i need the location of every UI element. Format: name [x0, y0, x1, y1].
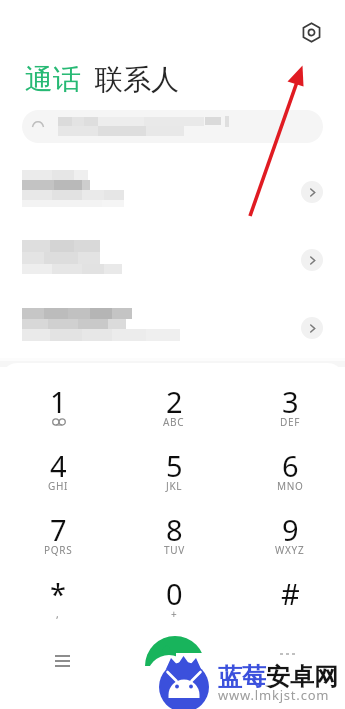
staticText: 蓝莓: [218, 662, 266, 692]
staticText: 9: [282, 510, 299, 549]
button[interactable]: 6: [252, 446, 328, 504]
button[interactable]: 5: [136, 446, 212, 504]
staticText: GHI: [48, 479, 69, 493]
staticText: DEF: [280, 415, 301, 429]
staticText: 3: [282, 382, 299, 421]
staticText: 8: [166, 510, 183, 549]
button[interactable]: #: [252, 574, 328, 632]
staticText: 5: [166, 446, 183, 485]
button[interactable]: [0, 294, 345, 362]
staticText: #: [281, 574, 300, 613]
button[interactable]: Call: [146, 638, 203, 695]
button[interactable]: 7: [20, 510, 96, 568]
staticText: WXYZ: [275, 543, 305, 557]
staticText: 安卓网: [266, 662, 338, 692]
staticText: 7: [50, 510, 67, 549]
staticText: 6: [282, 446, 299, 485]
button[interactable]: More options: [270, 637, 304, 671]
staticText: 2: [166, 382, 183, 421]
staticText: 0: [166, 574, 183, 613]
button[interactable]: 联系人: [95, 62, 179, 97]
staticText: *: [50, 574, 66, 613]
staticText: 通话: [25, 62, 81, 97]
button[interactable]: [0, 158, 345, 226]
staticText: JKL: [166, 479, 183, 493]
button[interactable]: *: [20, 574, 96, 632]
staticText: 联系人: [95, 62, 179, 97]
button[interactable]: 通话: [25, 62, 81, 97]
staticText: 4: [50, 446, 67, 485]
staticText: MNO: [277, 479, 304, 493]
staticText: ,: [56, 607, 60, 621]
staticText: ABC: [163, 415, 185, 429]
staticText: TUV: [164, 543, 185, 557]
button[interactable]: [22, 110, 323, 143]
button[interactable]: [0, 226, 345, 294]
staticText: PQRS: [44, 543, 73, 557]
button[interactable]: 3: [252, 382, 328, 440]
staticText: +: [171, 607, 178, 621]
staticText: www.lmkjst.com: [218, 686, 330, 704]
button[interactable]: 4: [20, 446, 96, 504]
staticText: 1: [50, 382, 67, 421]
button[interactable]: 0: [136, 574, 212, 632]
button[interactable]: 2: [136, 382, 212, 440]
button[interactable]: Menu: [45, 644, 79, 678]
button[interactable]: 9: [252, 510, 328, 568]
button[interactable]: 8: [136, 510, 212, 568]
button[interactable]: 1: [20, 382, 96, 440]
button[interactable]: Settings: [296, 17, 326, 47]
